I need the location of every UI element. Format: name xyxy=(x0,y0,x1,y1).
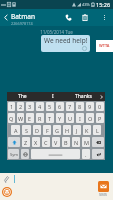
staticText: 3 xyxy=(28,103,32,110)
button[interactable]: Q xyxy=(8,113,15,123)
staticText: We need help! xyxy=(44,36,88,45)
staticText: B xyxy=(64,139,68,146)
staticText: F xyxy=(46,127,49,134)
staticText: N xyxy=(74,139,79,146)
button[interactable]: Thanks xyxy=(68,92,98,101)
staticText: I xyxy=(79,115,81,122)
button[interactable]: K xyxy=(83,125,91,135)
staticText: 11/05/2014 Tue xyxy=(0,29,113,35)
button[interactable]: 2 xyxy=(17,102,24,111)
button[interactable] xyxy=(92,149,104,159)
button[interactable]: More options xyxy=(98,9,110,26)
staticText: T xyxy=(48,115,52,122)
button[interactable]: I xyxy=(76,113,84,123)
staticText: 4 xyxy=(38,103,42,110)
staticText: 0 xyxy=(98,103,102,110)
button[interactable]: Call xyxy=(61,9,75,26)
button[interactable]: Y xyxy=(56,113,64,123)
button[interactable]: D xyxy=(33,125,41,135)
button[interactable]: O xyxy=(86,113,94,123)
staticText: J xyxy=(76,127,78,134)
button[interactable]: A xyxy=(11,125,20,135)
staticText: R xyxy=(38,115,42,122)
button[interactable]: M xyxy=(82,137,90,147)
button[interactable]: F xyxy=(43,125,51,135)
button[interactable] xyxy=(8,137,20,147)
button[interactable]: V xyxy=(52,137,60,147)
staticText: Q xyxy=(9,115,14,122)
button[interactable]: B xyxy=(62,137,70,147)
button[interactable]: 0 xyxy=(96,102,104,111)
staticText: Y xyxy=(58,115,62,122)
button[interactable]: 7 xyxy=(66,102,74,111)
button[interactable]: Z xyxy=(22,137,30,147)
staticText: WTTA xyxy=(99,43,110,48)
button[interactable]: . xyxy=(82,149,90,159)
staticText: . xyxy=(85,151,87,158)
button[interactable]: X xyxy=(32,137,40,147)
button[interactable]: Sym xyxy=(8,149,19,159)
staticText: M xyxy=(84,139,89,146)
staticText: 43% xyxy=(82,2,90,7)
button[interactable]: Delete xyxy=(78,9,92,26)
button[interactable]: SMS xyxy=(98,181,109,197)
staticText: X xyxy=(34,139,38,146)
button[interactable]: W xyxy=(17,113,24,123)
staticText: O xyxy=(88,115,93,122)
button[interactable]: 6 xyxy=(56,102,64,111)
staticText: 9 xyxy=(88,103,92,110)
staticText: K xyxy=(85,127,89,134)
staticText: G xyxy=(55,127,60,134)
button[interactable]: U xyxy=(66,113,74,123)
button[interactable]: G xyxy=(53,125,61,135)
button[interactable]: H xyxy=(63,125,71,135)
button[interactable]: Emoji xyxy=(2,187,12,197)
staticText: 7 xyxy=(68,103,72,110)
button[interactable]: 9 xyxy=(86,102,94,111)
button[interactable]: J xyxy=(73,125,81,135)
button[interactable]: E xyxy=(26,113,34,123)
staticText: 8 xyxy=(78,103,82,110)
staticText: 5 xyxy=(48,103,52,110)
staticText: H xyxy=(65,127,70,134)
button[interactable]: The xyxy=(7,92,38,101)
staticText: Batman xyxy=(11,12,35,21)
button[interactable]: 3 xyxy=(26,102,34,111)
staticText: P xyxy=(98,115,102,122)
button[interactable] xyxy=(31,149,80,159)
staticText: Sym xyxy=(10,152,18,157)
button[interactable] xyxy=(21,149,29,159)
staticText: V xyxy=(54,139,58,146)
button[interactable]: 4 xyxy=(36,102,44,111)
staticText: 6 xyxy=(58,103,62,110)
button[interactable]: 8 xyxy=(76,102,84,111)
button[interactable]: T xyxy=(46,113,54,123)
staticText: I xyxy=(52,93,54,100)
button[interactable]: I xyxy=(38,92,68,101)
staticText: Z xyxy=(24,139,28,146)
button[interactable]: Attach xyxy=(1,174,12,185)
button[interactable]: R xyxy=(36,113,44,123)
staticText: 2 xyxy=(19,103,23,110)
button[interactable]: P xyxy=(96,113,104,123)
button[interactable]: C xyxy=(42,137,50,147)
button[interactable]: L xyxy=(93,125,101,135)
button[interactable] xyxy=(92,137,104,147)
staticText: L xyxy=(96,127,99,134)
button[interactable]: 5 xyxy=(46,102,54,111)
staticText: U xyxy=(68,115,73,122)
staticText: C xyxy=(44,139,48,146)
staticText: 15:26 xyxy=(96,1,111,8)
staticText: D xyxy=(35,127,40,134)
button[interactable]: Back xyxy=(1,9,11,26)
button[interactable]: More suggestions xyxy=(98,92,105,101)
button[interactable]: WTTA xyxy=(96,40,113,52)
staticText: A xyxy=(14,127,18,134)
button[interactable]: 1 xyxy=(8,102,15,111)
staticText: 1 xyxy=(10,103,14,110)
staticText: SMS xyxy=(99,192,108,197)
button[interactable]: S xyxy=(22,125,31,135)
button[interactable]: We need help! xyxy=(41,35,90,52)
staticText: S xyxy=(25,127,29,134)
button[interactable]: N xyxy=(72,137,80,147)
